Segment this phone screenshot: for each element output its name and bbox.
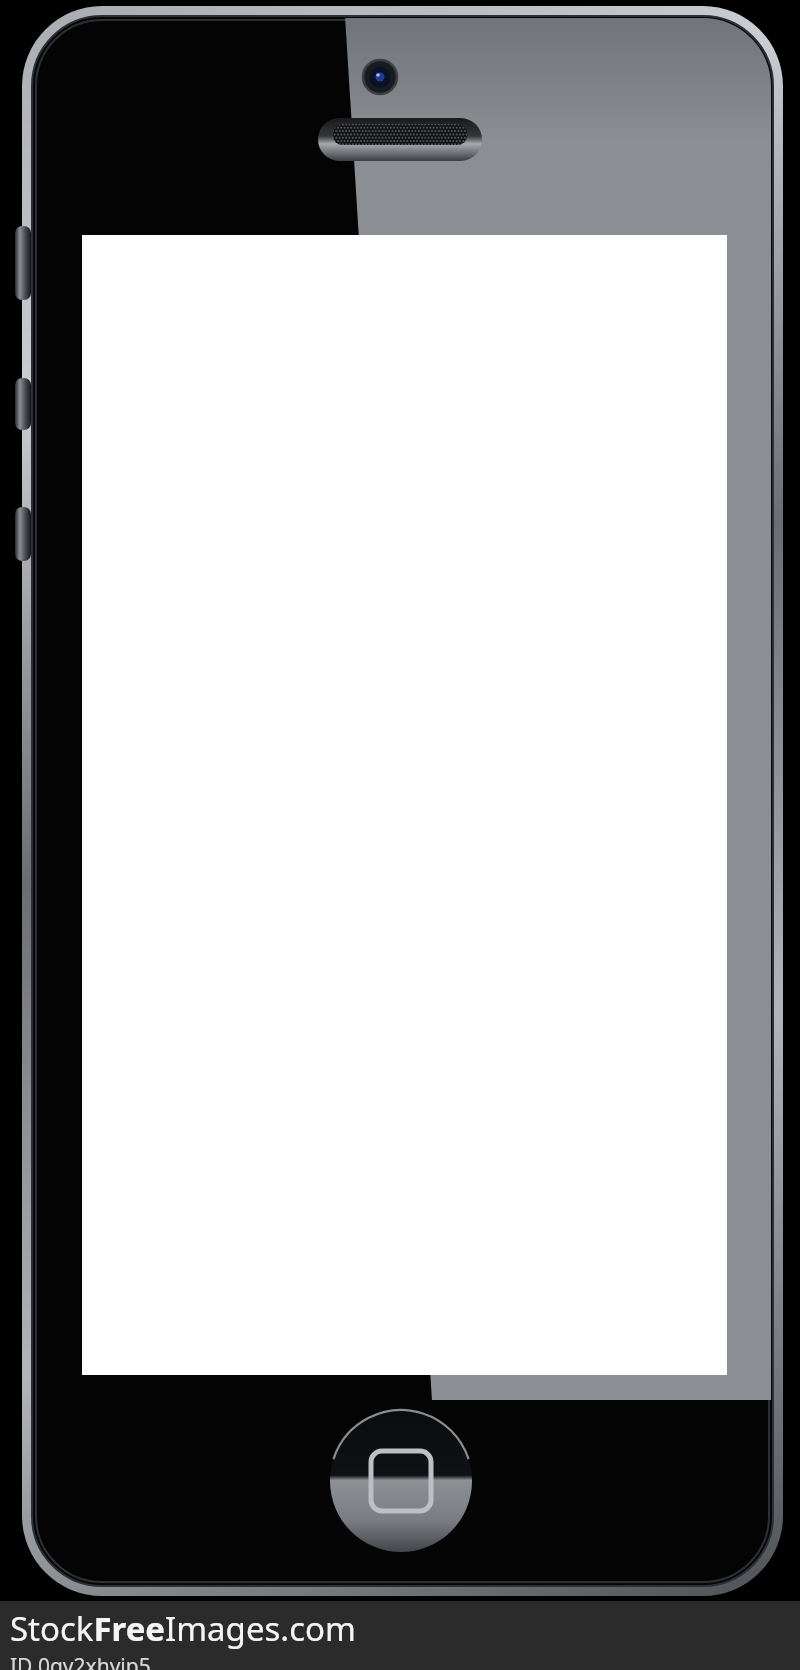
staticText: ID 0gy2xhyjp5 [10,1652,151,1670]
button[interactable]: StockFreeImages.com [0,1601,800,1670]
staticText: StockFreeImages.com [10,1606,356,1651]
